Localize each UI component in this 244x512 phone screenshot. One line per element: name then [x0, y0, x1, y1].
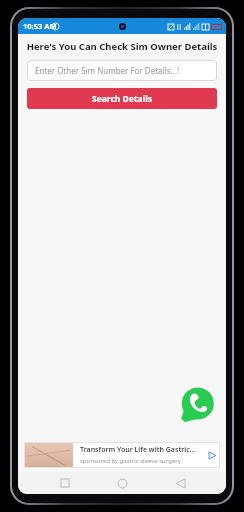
staticText: Here's You Can Check Sim Owner Details F…: [18, 40, 226, 53]
button[interactable]: Back: [169, 472, 191, 494]
staticText: Search Details: [92, 93, 153, 105]
staticText: 10:53 AM: [23, 21, 57, 31]
button[interactable]: Recent apps: [54, 472, 76, 494]
button[interactable]: Home: [111, 472, 133, 494]
button[interactable]: Search Details: [27, 88, 217, 109]
staticText: sponsored by gastric sleeve surgery: [80, 457, 181, 465]
staticText: Transform Your Life with Gastric...: [80, 445, 196, 455]
other: Ad choices: [209, 452, 216, 459]
button[interactable]: Chat on WhatsApp: [176, 384, 218, 426]
button[interactable]: Enter Other Sim Number For Details.. !: [27, 60, 217, 81]
button[interactable]: Transform Your Life with Gastric...: [24, 442, 220, 468]
staticText: Enter Other Sim Number For Details.. !: [35, 65, 180, 76]
